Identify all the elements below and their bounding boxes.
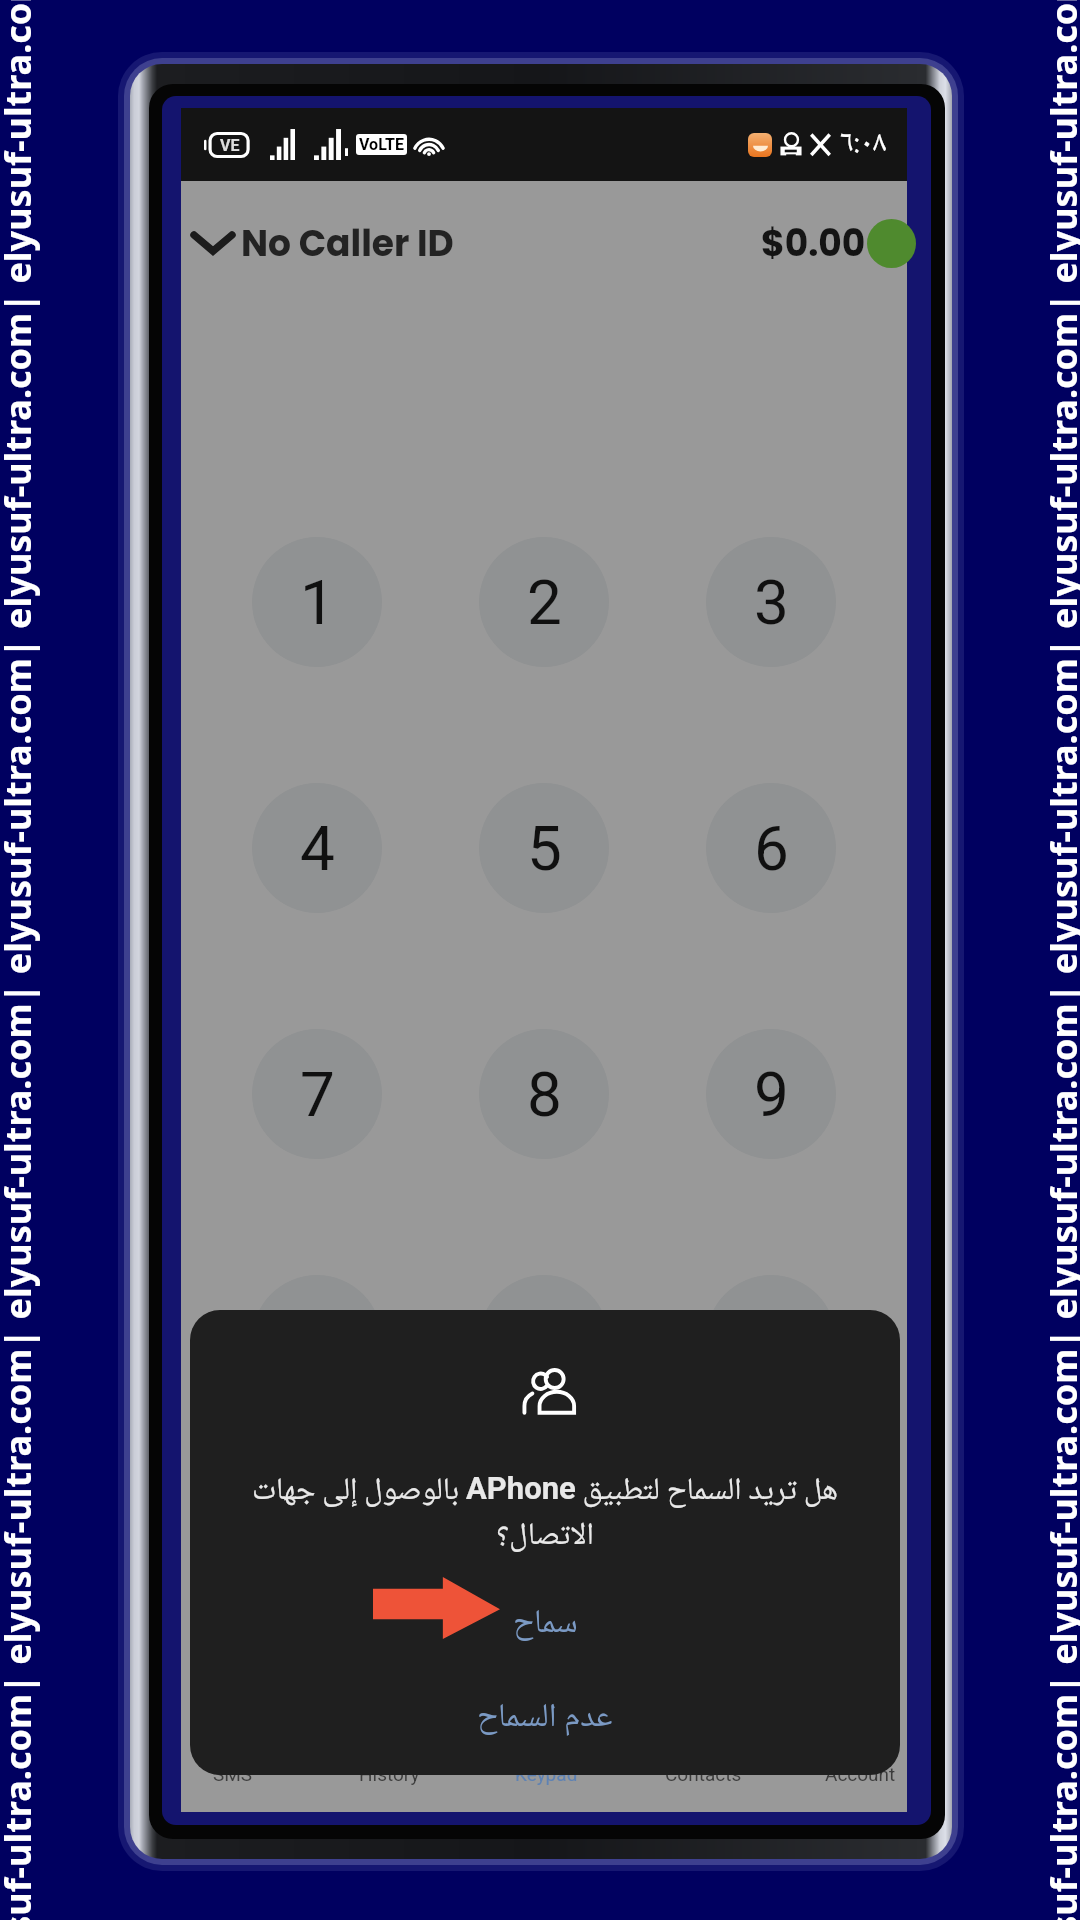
staticText: 3	[754, 566, 789, 639]
staticText: هل تريد السماح لتطبيق APhone بالوصول إلى…	[210, 1466, 880, 1563]
button[interactable]: 0	[479, 1275, 609, 1405]
button[interactable]: #	[706, 1275, 836, 1405]
button[interactable]: *	[252, 1275, 382, 1405]
button[interactable]: 3	[706, 537, 836, 667]
staticText: سماح	[513, 1597, 578, 1653]
button[interactable]: Contacts	[631, 1750, 776, 1812]
staticText: عدم السماح	[477, 1691, 613, 1747]
staticText: 7	[300, 1058, 335, 1131]
staticText: 8	[527, 1058, 562, 1131]
button[interactable]: Account status	[867, 219, 916, 268]
staticText: Contacts	[665, 1763, 742, 1785]
button[interactable]: Account	[788, 1750, 933, 1812]
staticText: Keypad	[515, 1763, 578, 1785]
button[interactable]: 7	[252, 1029, 382, 1159]
staticText: No Caller ID	[241, 218, 454, 268]
staticText: VoLTE	[359, 135, 404, 154]
button[interactable]: 8	[479, 1029, 609, 1159]
staticText: *	[304, 1304, 331, 1377]
button[interactable]: 4	[252, 783, 382, 913]
staticText: Account	[825, 1763, 896, 1785]
staticText: 9	[754, 1058, 789, 1131]
staticText: VE	[220, 136, 240, 155]
button[interactable]: عدم السماح	[190, 1683, 900, 1755]
button[interactable]: 2	[479, 537, 609, 667]
staticText: 1	[300, 566, 335, 639]
staticText: 5	[527, 812, 562, 885]
button[interactable]: Keypad	[474, 1750, 619, 1812]
staticText: History	[359, 1763, 420, 1785]
button[interactable]: 1	[252, 537, 382, 667]
button[interactable]: سماح	[190, 1589, 900, 1661]
staticText: 4	[300, 812, 335, 885]
staticText: SMS	[213, 1763, 253, 1785]
button[interactable]: Expand caller details	[184, 217, 242, 269]
staticText: 6	[754, 812, 789, 885]
staticText: elyusuf-ultra.com| elyusuf-ultra.com| el…	[0, 0, 42, 1920]
staticText: 2	[527, 566, 562, 639]
button[interactable]: 5	[479, 783, 609, 913]
staticText: 0	[527, 1304, 562, 1377]
button[interactable]: History	[317, 1750, 462, 1812]
button[interactable]: 6	[706, 783, 836, 913]
staticText: #	[752, 1304, 791, 1377]
button[interactable]: 9	[706, 1029, 836, 1159]
staticText: $0.00	[761, 218, 866, 268]
button[interactable]: SMS	[160, 1750, 305, 1812]
staticText: ٦:٠٨	[840, 119, 887, 170]
staticText: elyusuf-ultra.com| elyusuf-ultra.com| el…	[1039, 0, 1080, 1920]
